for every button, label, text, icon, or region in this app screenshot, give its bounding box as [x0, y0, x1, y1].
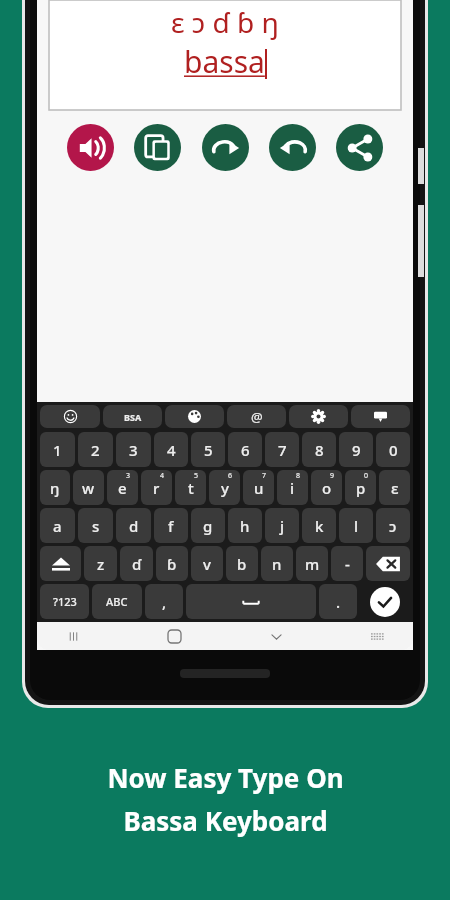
staticText: a — [53, 516, 62, 536]
button[interactable]: s — [78, 508, 113, 543]
staticText: 5 — [194, 471, 199, 481]
button[interactable]: r — [141, 470, 172, 505]
button[interactable]: l — [339, 508, 373, 543]
staticText: b — [237, 554, 247, 574]
button[interactable]: ŋ — [40, 470, 70, 505]
staticText: 8 — [315, 440, 324, 460]
button[interactable]: e — [107, 470, 138, 505]
button[interactable]: - — [331, 546, 363, 581]
button[interactable]: p — [345, 470, 376, 505]
button[interactable]: g — [191, 508, 225, 543]
button[interactable]: Home — [162, 624, 186, 648]
button[interactable]: ?123 — [40, 584, 89, 619]
button[interactable]: Keyboard — [365, 624, 389, 648]
staticText: 9 — [352, 440, 361, 460]
staticText: 6 — [241, 440, 250, 460]
button[interactable]: d — [116, 508, 151, 543]
button[interactable]: ɛ — [379, 470, 410, 505]
staticText: Bassa Keyboard — [123, 803, 328, 838]
button[interactable]: k — [302, 508, 336, 543]
button[interactable]: 5 — [191, 432, 225, 467]
button[interactable]: o — [311, 470, 342, 505]
staticText: l — [354, 516, 359, 536]
button[interactable]: 4 — [154, 432, 188, 467]
button[interactable]: ɛ ɔ ɗ ɓ ŋ — [49, 0, 401, 110]
button[interactable]: u — [243, 470, 274, 505]
staticText: - — [345, 554, 350, 574]
button[interactable]: ɓ — [156, 546, 188, 581]
staticText: p — [356, 478, 366, 498]
button[interactable]: Redo — [202, 124, 249, 171]
button[interactable]: shift — [40, 546, 81, 581]
button[interactable]: 6 — [228, 432, 262, 467]
staticText: ABC — [106, 594, 128, 609]
staticText: w — [82, 478, 95, 498]
button[interactable]: a — [40, 508, 75, 543]
button[interactable]: theme — [165, 405, 224, 428]
staticText: bassa — [184, 41, 265, 82]
button[interactable]: space — [186, 584, 316, 619]
button[interactable]: del — [366, 546, 410, 581]
staticText: . — [336, 592, 341, 612]
button[interactable]: ɔ — [376, 508, 410, 543]
button[interactable]: Back — [264, 624, 288, 648]
staticText: 9 — [330, 471, 335, 481]
button[interactable]: i — [277, 470, 308, 505]
button[interactable]: 1 — [40, 432, 75, 467]
button[interactable]: Undo — [269, 124, 316, 171]
button[interactable]: Share — [336, 124, 383, 171]
button[interactable]: gear — [289, 405, 348, 428]
staticText: i — [290, 478, 295, 498]
button[interactable]: emoji — [40, 405, 100, 428]
button[interactable]: h — [228, 508, 262, 543]
button[interactable]: 8 — [302, 432, 336, 467]
button[interactable]: , — [145, 584, 183, 619]
button[interactable]: Copy — [134, 124, 181, 171]
button[interactable]: ABC — [92, 584, 142, 619]
staticText: ɓ — [167, 554, 177, 574]
staticText: BSA — [124, 411, 142, 423]
staticText: t — [188, 478, 194, 498]
button[interactable]: v — [191, 546, 223, 581]
staticText: 2 — [91, 440, 100, 460]
button[interactable]: 0 — [376, 432, 410, 467]
button[interactable]: 7 — [265, 432, 299, 467]
button[interactable]: . — [319, 584, 357, 619]
button[interactable]: 3 — [116, 432, 151, 467]
staticText: o — [322, 478, 332, 498]
button[interactable]: bsa — [103, 405, 162, 428]
staticText: u — [254, 478, 264, 498]
button[interactable]: ɗ — [120, 546, 153, 581]
staticText: d — [129, 516, 139, 536]
button[interactable]: t — [175, 470, 206, 505]
staticText: 7 — [278, 440, 287, 460]
staticText: ɗ — [132, 554, 142, 574]
staticText: 7 — [262, 471, 267, 481]
staticText: n — [272, 554, 282, 574]
button[interactable]: kb — [351, 405, 410, 428]
staticText: ɛ ɔ ɗ ɓ ŋ — [171, 3, 279, 41]
button[interactable]: 2 — [78, 432, 113, 467]
button[interactable]: n — [261, 546, 293, 581]
staticText: s — [92, 516, 100, 536]
staticText: 0 — [389, 440, 398, 460]
staticText: j — [280, 516, 285, 536]
button[interactable]: 9 — [339, 432, 373, 467]
button[interactable]: j — [265, 508, 299, 543]
staticText: 3 — [129, 440, 138, 460]
button[interactable]: z — [84, 546, 117, 581]
button[interactable]: Recents — [61, 624, 85, 648]
staticText: 3 — [126, 471, 131, 481]
button[interactable]: at — [227, 405, 286, 428]
staticText: 4 — [160, 471, 165, 481]
button[interactable]: enter — [360, 584, 410, 619]
button[interactable]: b — [226, 546, 258, 581]
button[interactable]: m — [296, 546, 328, 581]
staticText: m — [305, 554, 320, 574]
staticText: v — [203, 554, 211, 574]
button[interactable]: f — [154, 508, 188, 543]
button[interactable]: Speak — [67, 124, 114, 171]
button[interactable]: w — [73, 470, 104, 505]
staticText: k — [315, 516, 324, 536]
button[interactable]: y — [209, 470, 240, 505]
